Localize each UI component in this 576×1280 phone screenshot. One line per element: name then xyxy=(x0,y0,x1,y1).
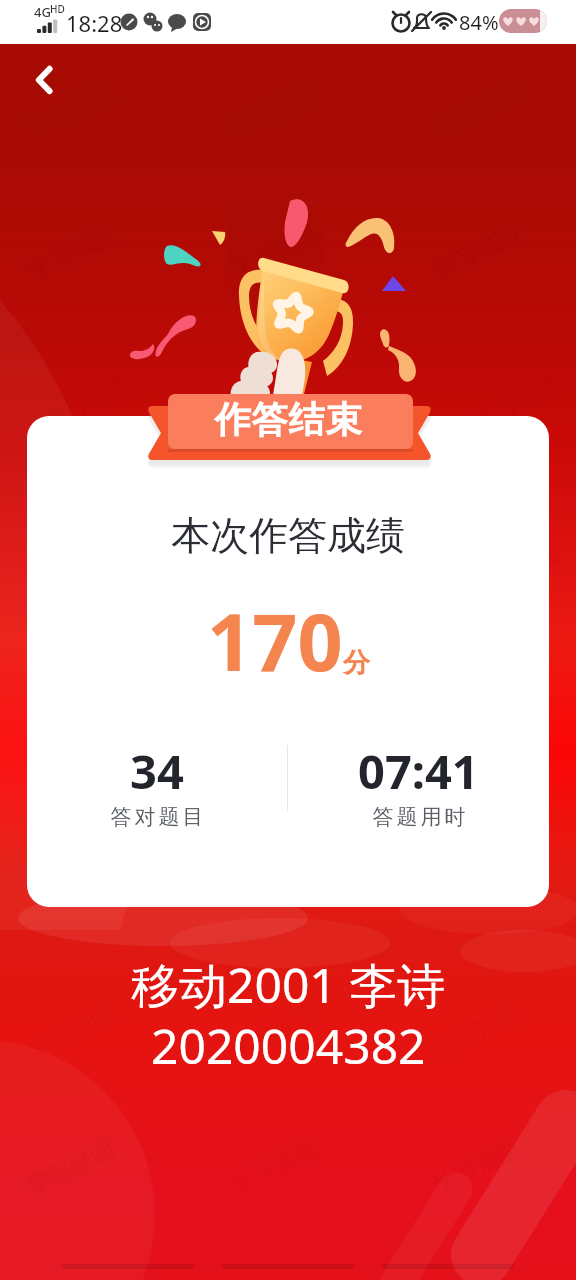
staticText: 170 xyxy=(207,587,343,695)
staticText: 2020004382 xyxy=(151,1013,426,1078)
staticText: 学习强国 xyxy=(428,999,524,1066)
staticText: 学习强国 xyxy=(226,999,322,1066)
staticText: 07:41 xyxy=(358,739,479,803)
staticText: 34 xyxy=(130,739,184,803)
button[interactable]: 07:41 xyxy=(288,739,549,830)
staticText: 84% xyxy=(459,9,499,36)
staticText: 答题用时 xyxy=(371,804,467,830)
staticText: 学习强国 xyxy=(470,541,566,608)
button[interactable]: 34 xyxy=(27,739,287,830)
button[interactable]: Back xyxy=(16,52,72,108)
staticText: 学习强国 xyxy=(23,77,119,144)
staticText: 学习强国 xyxy=(428,1134,524,1201)
staticText: 移动2001 李诗 xyxy=(131,952,446,1018)
staticText: 学习强国 xyxy=(23,999,119,1066)
staticText: 学习强国 xyxy=(468,371,564,438)
staticText: 学习强国 xyxy=(226,219,322,286)
staticText: 答对题目 xyxy=(109,804,205,830)
staticText: 作答结束 xyxy=(214,397,362,442)
staticText: 本次作答成绩 xyxy=(171,511,405,560)
staticText: 分 xyxy=(343,646,370,680)
staticText: 4G xyxy=(34,3,51,21)
staticText: 学习强国 xyxy=(38,371,134,438)
staticText: 18:28 xyxy=(66,8,123,38)
staticText: HD xyxy=(50,2,65,16)
